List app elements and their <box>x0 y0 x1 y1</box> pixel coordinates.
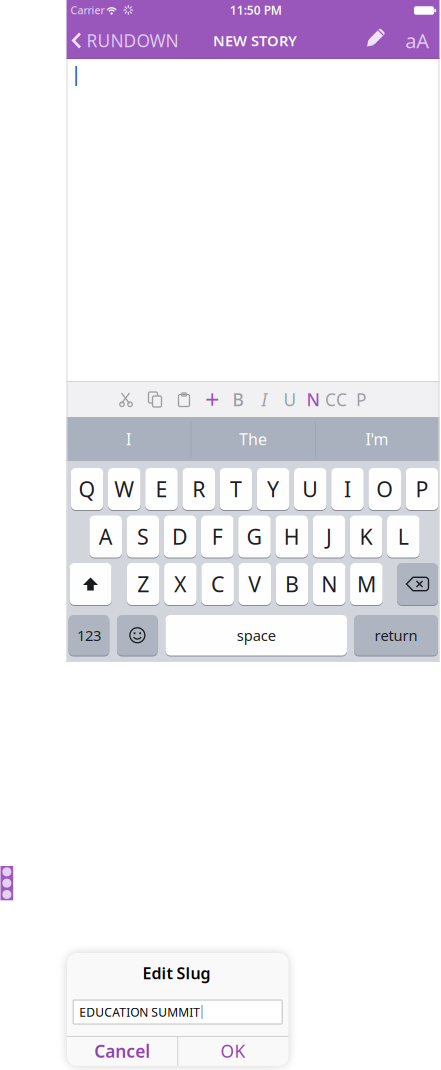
staticText: C <box>211 570 224 598</box>
staticText: N <box>321 570 337 598</box>
staticText: NEW STORY <box>213 31 297 50</box>
staticText: K <box>360 522 373 551</box>
button[interactable]: X <box>164 562 197 606</box>
button[interactable]: N <box>306 388 319 411</box>
button[interactable]: Y <box>257 467 289 511</box>
staticText: V <box>248 570 261 598</box>
button[interactable]: Cancel <box>67 1036 177 1066</box>
staticText: + <box>205 382 219 416</box>
staticText: U <box>302 475 318 503</box>
staticText: S <box>137 522 149 551</box>
button[interactable]: V <box>238 562 271 606</box>
button[interactable]: I <box>261 388 267 411</box>
button[interactable]: W <box>108 467 141 511</box>
button[interactable]: M <box>350 562 383 606</box>
button[interactable]: P <box>356 388 366 411</box>
button[interactable]: CC <box>325 388 347 411</box>
staticText: F <box>212 522 223 551</box>
button[interactable]: K <box>350 514 382 558</box>
button[interactable]: Paste <box>177 391 191 407</box>
button[interactable]: Copy <box>147 391 162 407</box>
button[interactable]: C <box>201 562 234 606</box>
staticText: 123 <box>77 625 101 645</box>
button[interactable]: O <box>368 467 401 511</box>
button[interactable]: Emoji <box>117 615 158 655</box>
button[interactable]: Insert <box>205 382 219 416</box>
staticText: W <box>114 475 134 503</box>
button[interactable]: The <box>239 428 267 450</box>
staticText: N <box>306 388 319 411</box>
staticText: R <box>192 475 205 503</box>
staticText: Z <box>137 570 149 598</box>
staticText: B <box>232 388 243 411</box>
button[interactable]: A <box>89 514 122 558</box>
button[interactable]: 123 <box>69 614 109 656</box>
button[interactable]: I'm <box>366 428 389 450</box>
button[interactable]: R <box>182 467 215 511</box>
staticText: U <box>283 388 296 411</box>
staticText: Edit Slug <box>142 962 210 984</box>
staticText: OK <box>220 1039 245 1062</box>
staticText: I'm <box>366 428 389 450</box>
button[interactable]: E <box>145 467 178 511</box>
staticText: I <box>261 388 267 411</box>
staticText: D <box>172 522 188 551</box>
staticText: RUNDOWN <box>86 29 178 52</box>
button[interactable]: return <box>354 614 438 656</box>
button[interactable]: Edit slug <box>360 23 390 53</box>
staticText: Y <box>267 475 279 503</box>
button[interactable]: T <box>220 467 252 511</box>
staticText: return <box>374 625 417 645</box>
staticText: I <box>344 475 351 503</box>
button[interactable]: L <box>387 514 420 558</box>
staticText: L <box>398 522 409 551</box>
staticText: P <box>356 388 366 411</box>
button[interactable]: RUNDOWN <box>71 29 178 52</box>
staticText: CC <box>325 388 347 411</box>
staticText: G <box>246 522 262 551</box>
button[interactable]: Cut <box>119 392 133 407</box>
button[interactable]: P <box>406 467 438 511</box>
staticText: J <box>326 522 332 551</box>
staticText: aA <box>405 27 429 54</box>
button[interactable]: Shift <box>69 563 111 605</box>
staticText: T <box>230 475 242 503</box>
button[interactable]: H <box>275 514 308 558</box>
staticText: X <box>174 570 187 598</box>
button[interactable]: U <box>294 467 327 511</box>
button[interactable]: space <box>165 614 347 656</box>
staticText: H <box>284 522 300 551</box>
staticText: O <box>376 475 393 503</box>
button[interactable]: Q <box>71 467 103 511</box>
button[interactable]: S <box>127 514 159 558</box>
button[interactable]: D <box>164 514 196 558</box>
button[interactable]: OK <box>178 1036 288 1066</box>
button[interactable]: Delete <box>397 563 438 605</box>
staticText: EDUCATION SUMMIT <box>79 1004 200 1020</box>
staticText: Carrier <box>70 3 104 17</box>
button[interactable]: J <box>313 514 345 558</box>
button[interactable]: I <box>331 467 364 511</box>
button[interactable]: B <box>232 388 243 411</box>
staticText: Q <box>79 475 96 503</box>
staticText: E <box>155 475 167 503</box>
button[interactable]: I <box>126 428 131 450</box>
button[interactable]: F <box>201 514 234 558</box>
staticText: A <box>99 522 113 551</box>
staticText: B <box>285 570 299 598</box>
staticText: space <box>237 625 276 645</box>
button[interactable]: U <box>283 388 296 411</box>
button[interactable]: Z <box>127 562 159 606</box>
staticText: Cancel <box>94 1039 150 1062</box>
button[interactable]: B <box>276 562 308 606</box>
staticText: 11:50 PM <box>230 2 282 18</box>
staticText: I <box>126 428 131 450</box>
staticText: P <box>415 475 428 503</box>
staticText: The <box>239 428 267 450</box>
staticText: M <box>357 570 376 598</box>
button[interactable]: N <box>313 562 345 606</box>
button[interactable]: Text size <box>405 27 429 54</box>
button[interactable]: G <box>238 514 271 558</box>
